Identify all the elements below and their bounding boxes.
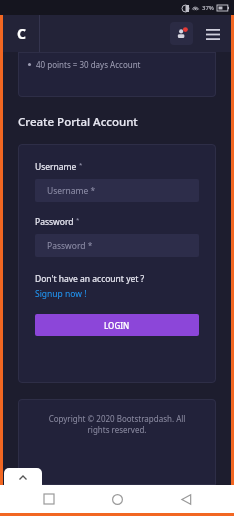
staticText: LOGIN [104,320,130,331]
staticText: C [17,24,26,43]
staticText: * [79,161,83,169]
staticText: * [76,216,80,224]
button[interactable]: Password * [35,234,199,257]
button[interactable]: Signup now ! [35,288,87,300]
staticText: Copyright © 2020 Bootstrapdash. All righ… [43,413,191,435]
staticText: Username [35,161,77,173]
button[interactable]: Username * [35,179,199,202]
button[interactable]: Menu [203,24,223,44]
button[interactable]: LOGIN [35,314,199,336]
staticText: Password * [47,240,93,252]
staticText: 40 points = 30 days Account [36,59,141,70]
button[interactable]: Profile [170,22,193,45]
button[interactable]: 40 points = 30 days Account [18,52,216,97]
button[interactable]: Hide keyboard [4,468,42,488]
staticText: Create Portal Account [18,114,138,130]
staticText: Username * [47,185,96,197]
staticText: Password [35,216,74,228]
button[interactable]: Back [166,485,206,513]
staticText: Signup now ! [35,288,87,300]
button[interactable]: Home logo [3,15,39,52]
button[interactable]: Recent apps [29,485,69,513]
staticText: Don't have an account yet ? [35,273,145,285]
button[interactable]: Home [97,485,137,513]
staticText: 37% [202,4,214,12]
